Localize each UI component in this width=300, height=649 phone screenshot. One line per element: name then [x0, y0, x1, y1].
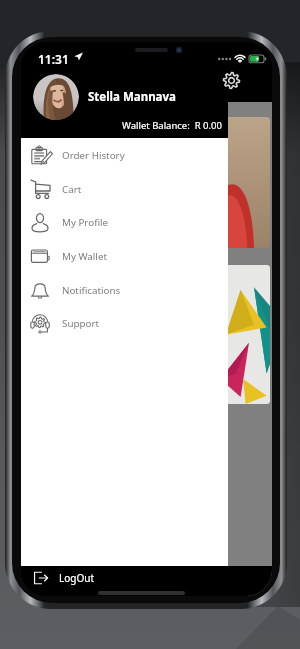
- button[interactable]: My Profile: [21, 205, 228, 239]
- staticText: LogOut: [59, 571, 95, 585]
- button[interactable]: My Wallet: [21, 239, 228, 273]
- button[interactable]: Settings: [222, 71, 241, 90]
- staticText: My Profile: [62, 216, 109, 229]
- button[interactable]: Cart: [21, 172, 228, 206]
- staticText: Cart: [62, 183, 82, 196]
- button[interactable]: Notifications: [21, 273, 228, 307]
- staticText: My Wallet: [62, 250, 107, 263]
- staticText: Notifications: [62, 284, 121, 297]
- button[interactable]: Support: [21, 306, 228, 340]
- staticText: Wallet Balance: R 0.00: [122, 119, 222, 132]
- staticText: 11:31: [38, 51, 69, 67]
- staticText: Support: [62, 317, 99, 330]
- staticText: Order History: [62, 149, 125, 162]
- button[interactable]: LogOut: [21, 566, 228, 590]
- button[interactable]: Order History: [21, 138, 228, 172]
- staticText: Stella Mannava: [88, 89, 176, 105]
